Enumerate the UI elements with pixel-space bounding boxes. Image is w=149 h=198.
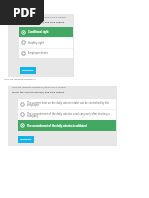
staticText: Healthy right [28,41,44,45]
staticText: Conditional right [28,30,49,34]
button[interactable]: Conditional right [19,27,73,37]
button[interactable]: Healthy right [19,37,73,48]
staticText: From the following statements, which one… [12,86,67,89]
staticText: CONTINUE [20,138,32,141]
staticText: The current limit on the daily calorie i… [27,101,115,107]
button[interactable]: The commitment of the daily calories is … [18,120,116,131]
button[interactable]: CONTINUE [20,67,36,74]
staticText: Select the correct option(s) and click S… [12,90,65,93]
staticText: The commitment of the daily calories is … [27,124,87,128]
staticText: The commitment of the daily calories use… [27,112,115,118]
staticText: PDF [13,4,36,20]
staticText: From the following statements [4,78,36,81]
staticText: CONTINUE [22,69,34,72]
staticText: From the following statements, which one… [12,16,67,19]
staticText: Select the correct option(s) and click S… [12,20,65,23]
button[interactable]: CONTINUE [18,136,34,143]
button[interactable]: Employee desire [19,48,73,58]
staticText: Employee desire [28,51,49,55]
button[interactable]: The current limit on the daily calorie i… [18,99,116,109]
button[interactable]: The commitment of the daily calories use… [18,109,116,120]
